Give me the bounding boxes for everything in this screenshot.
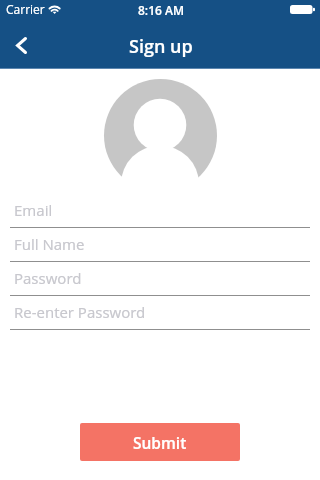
button[interactable]: Re-enter Password xyxy=(10,301,310,329)
button[interactable]: Submit xyxy=(80,423,240,461)
staticText: Re-enter Password xyxy=(14,302,146,322)
button[interactable]: Email xyxy=(10,199,310,227)
staticText: Carrier xyxy=(6,1,45,17)
staticText: Submit xyxy=(133,432,187,453)
button[interactable]: Password xyxy=(10,267,310,295)
staticText: Full Name xyxy=(14,234,85,254)
staticText: Email xyxy=(14,200,53,220)
staticText: 8:16 AM xyxy=(138,2,184,18)
staticText: Sign up xyxy=(129,34,193,59)
button[interactable]: Back xyxy=(0,24,42,66)
button[interactable]: Full Name xyxy=(10,233,310,261)
staticText: Password xyxy=(14,268,82,288)
